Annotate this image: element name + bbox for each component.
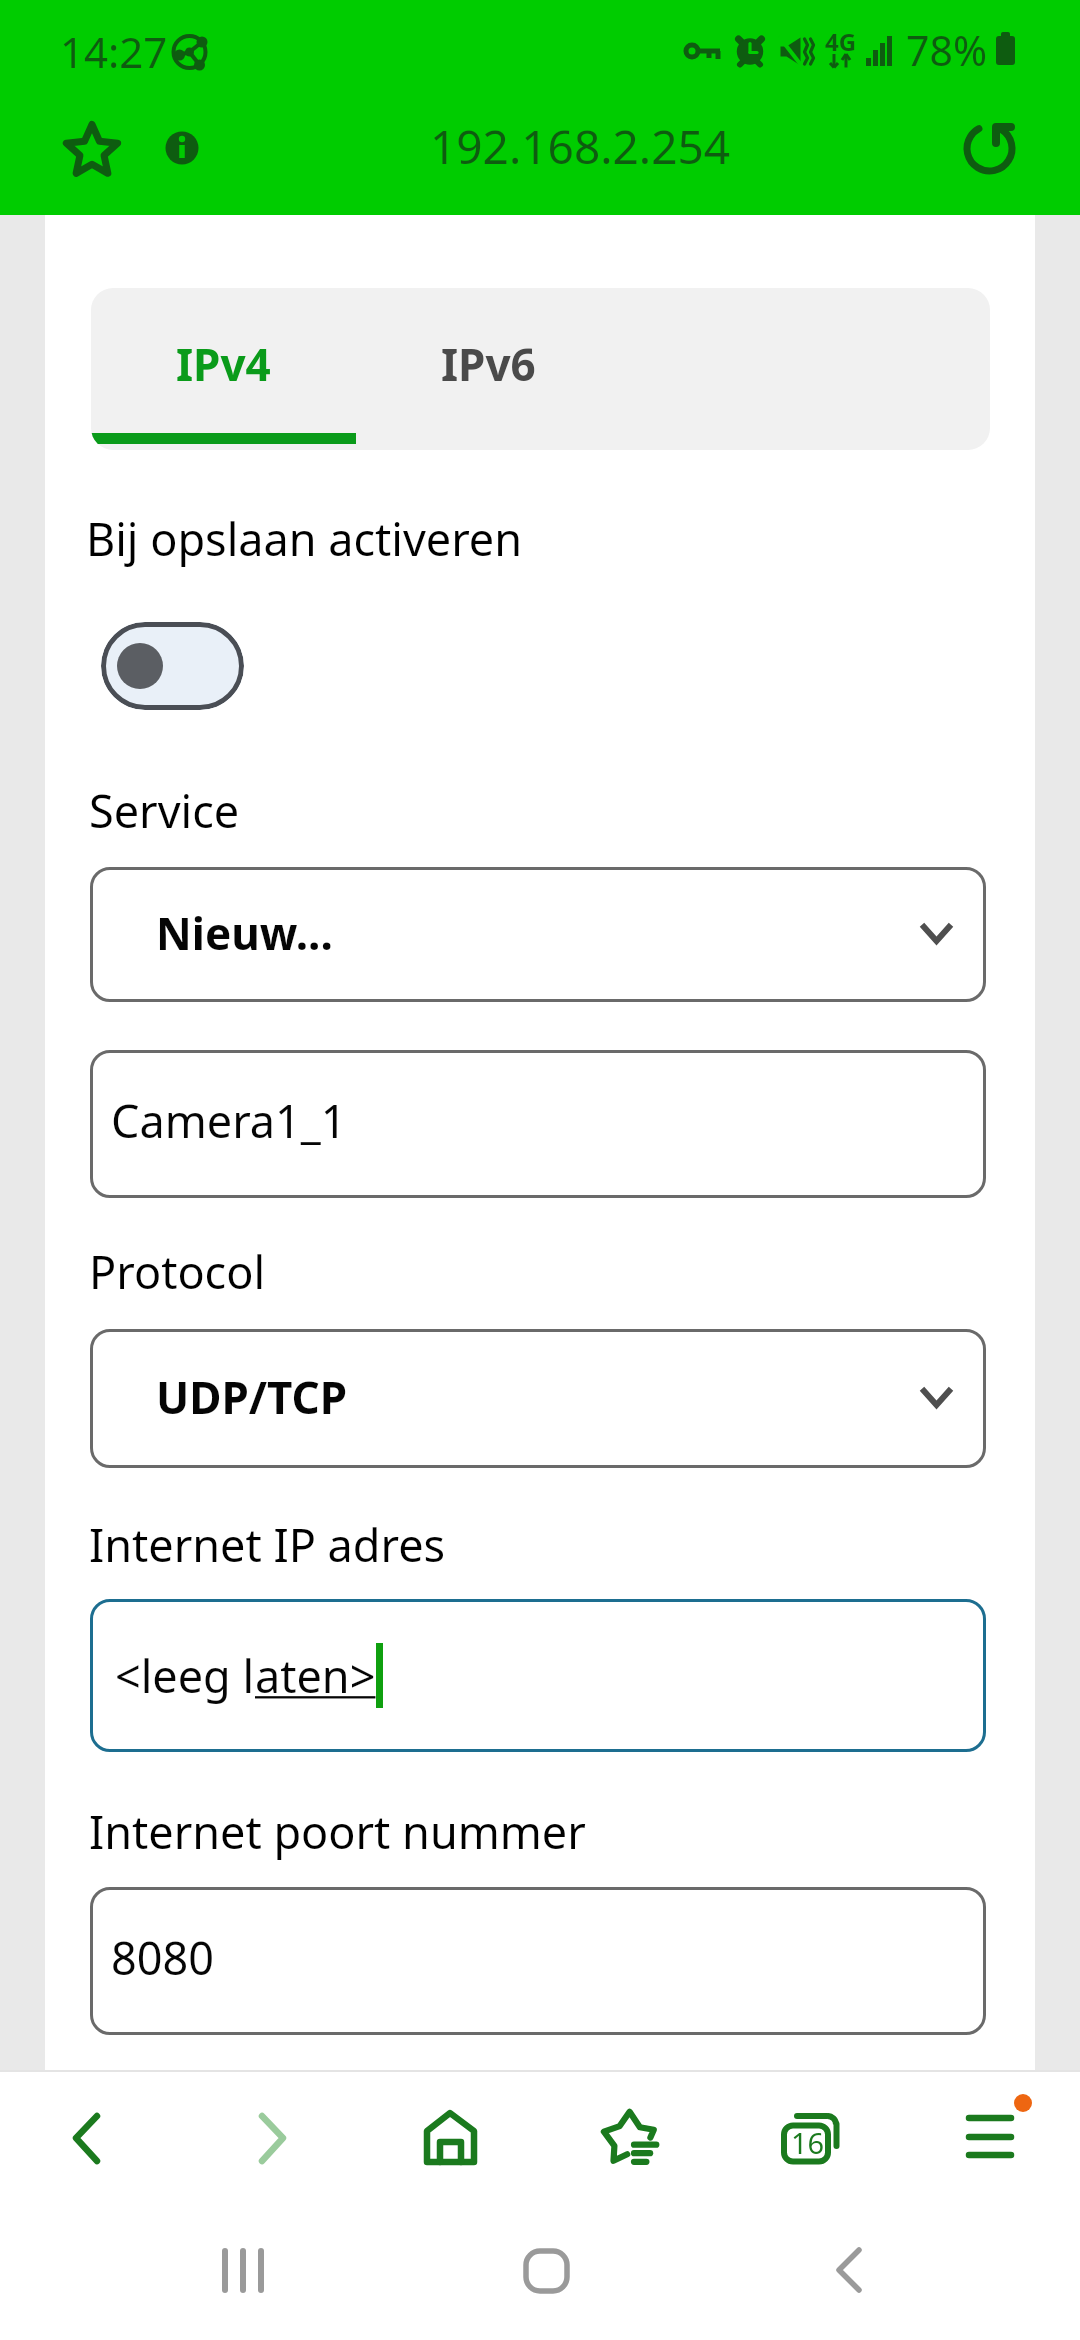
staticText: IPv6 [441,334,536,394]
button[interactable]: Recent apps [183,2209,303,2329]
staticText: Nieuw... [156,903,333,963]
staticText: 16 [791,2123,825,2162]
staticText: IPv4 [176,334,271,394]
button[interactable]: Bookmark [51,110,131,190]
staticText: Protocol [89,1241,266,1302]
staticText: Internet poort nummer [89,1801,586,1862]
staticText: <leeg l [115,1645,255,1706]
button[interactable]: Menu [928,2088,1048,2188]
staticText: 8080 [111,1927,214,1988]
button[interactable]: Nieuw... [90,867,986,1002]
button[interactable]: Forward [212,2088,332,2188]
button[interactable]: Reload page [955,114,1025,184]
button[interactable]: <leeg l [90,1599,986,1752]
button[interactable]: 8080 [90,1887,986,2035]
button[interactable]: Tabs [748,2088,868,2188]
staticText: Bij opslaan activeren [86,508,523,569]
staticText: 192.168.2.254 [430,115,731,178]
button[interactable]: Home [483,2209,603,2329]
staticText: aten> [255,1645,376,1706]
button[interactable]: Back [796,2209,916,2329]
staticText: 4G [825,25,857,58]
button[interactable]: IPv4 [91,288,356,450]
button[interactable]: UDP/TCP [90,1329,986,1468]
staticText: Service [89,780,240,841]
staticText: Internet IP adres [89,1514,446,1575]
button[interactable]: Bookmarks [568,2088,688,2188]
button[interactable]: Site information [158,124,206,172]
button[interactable]: Home [390,2088,510,2188]
button[interactable]: Activate on save [101,622,244,710]
staticText: UDP/TCP [156,1367,348,1427]
button[interactable]: IPv6 [356,288,621,450]
staticText: Camera1_1 [111,1090,347,1151]
staticText: 14:27 [60,23,168,80]
staticText: 78% [906,22,987,78]
button[interactable]: Back [27,2088,147,2188]
button[interactable]: Camera1_1 [90,1050,986,1198]
